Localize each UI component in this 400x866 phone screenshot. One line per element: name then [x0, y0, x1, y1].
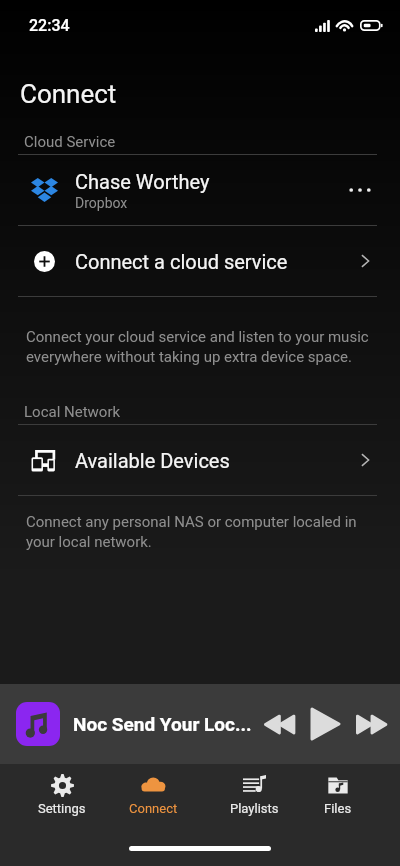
- other: Open: [352, 447, 378, 473]
- button[interactable]: Play: [303, 702, 347, 746]
- staticText: Local Network: [24, 403, 121, 421]
- button[interactable]: Playlists: [211, 764, 297, 826]
- button[interactable]: Previous: [259, 704, 299, 744]
- button[interactable]: Settings: [19, 764, 105, 826]
- staticText: Files: [324, 801, 352, 816]
- staticText: Connect a cloud service: [75, 250, 288, 273]
- staticText: Available Devices: [75, 449, 230, 472]
- staticText: Cloud Service: [24, 133, 116, 151]
- staticText: Noc Send Your Loc...: [73, 713, 259, 735]
- staticText: Connect your cloud service and listen to…: [26, 328, 374, 365]
- button[interactable]: More options: [342, 172, 378, 208]
- button[interactable]: Available Devices: [0, 425, 400, 495]
- button[interactable]: Chase Worthey: [0, 155, 400, 225]
- staticText: Settings: [38, 801, 86, 816]
- button[interactable]: Connect: [110, 764, 196, 826]
- staticText: Chase Worthey: [75, 170, 210, 193]
- button[interactable]: Connect a cloud service: [0, 226, 400, 296]
- staticText: Playlists: [230, 801, 279, 816]
- staticText: Dropbox: [75, 195, 128, 211]
- button[interactable]: Noc Send Your Loc...: [0, 684, 400, 764]
- staticText: Connect: [129, 801, 178, 816]
- other: Open: [352, 248, 378, 274]
- button[interactable]: Next: [351, 704, 391, 744]
- button[interactable]: Files: [295, 764, 381, 826]
- staticText: 22:34: [29, 16, 70, 35]
- staticText: Connect any personal NAS or computer loc…: [26, 513, 374, 550]
- staticText: Connect: [20, 79, 117, 109]
